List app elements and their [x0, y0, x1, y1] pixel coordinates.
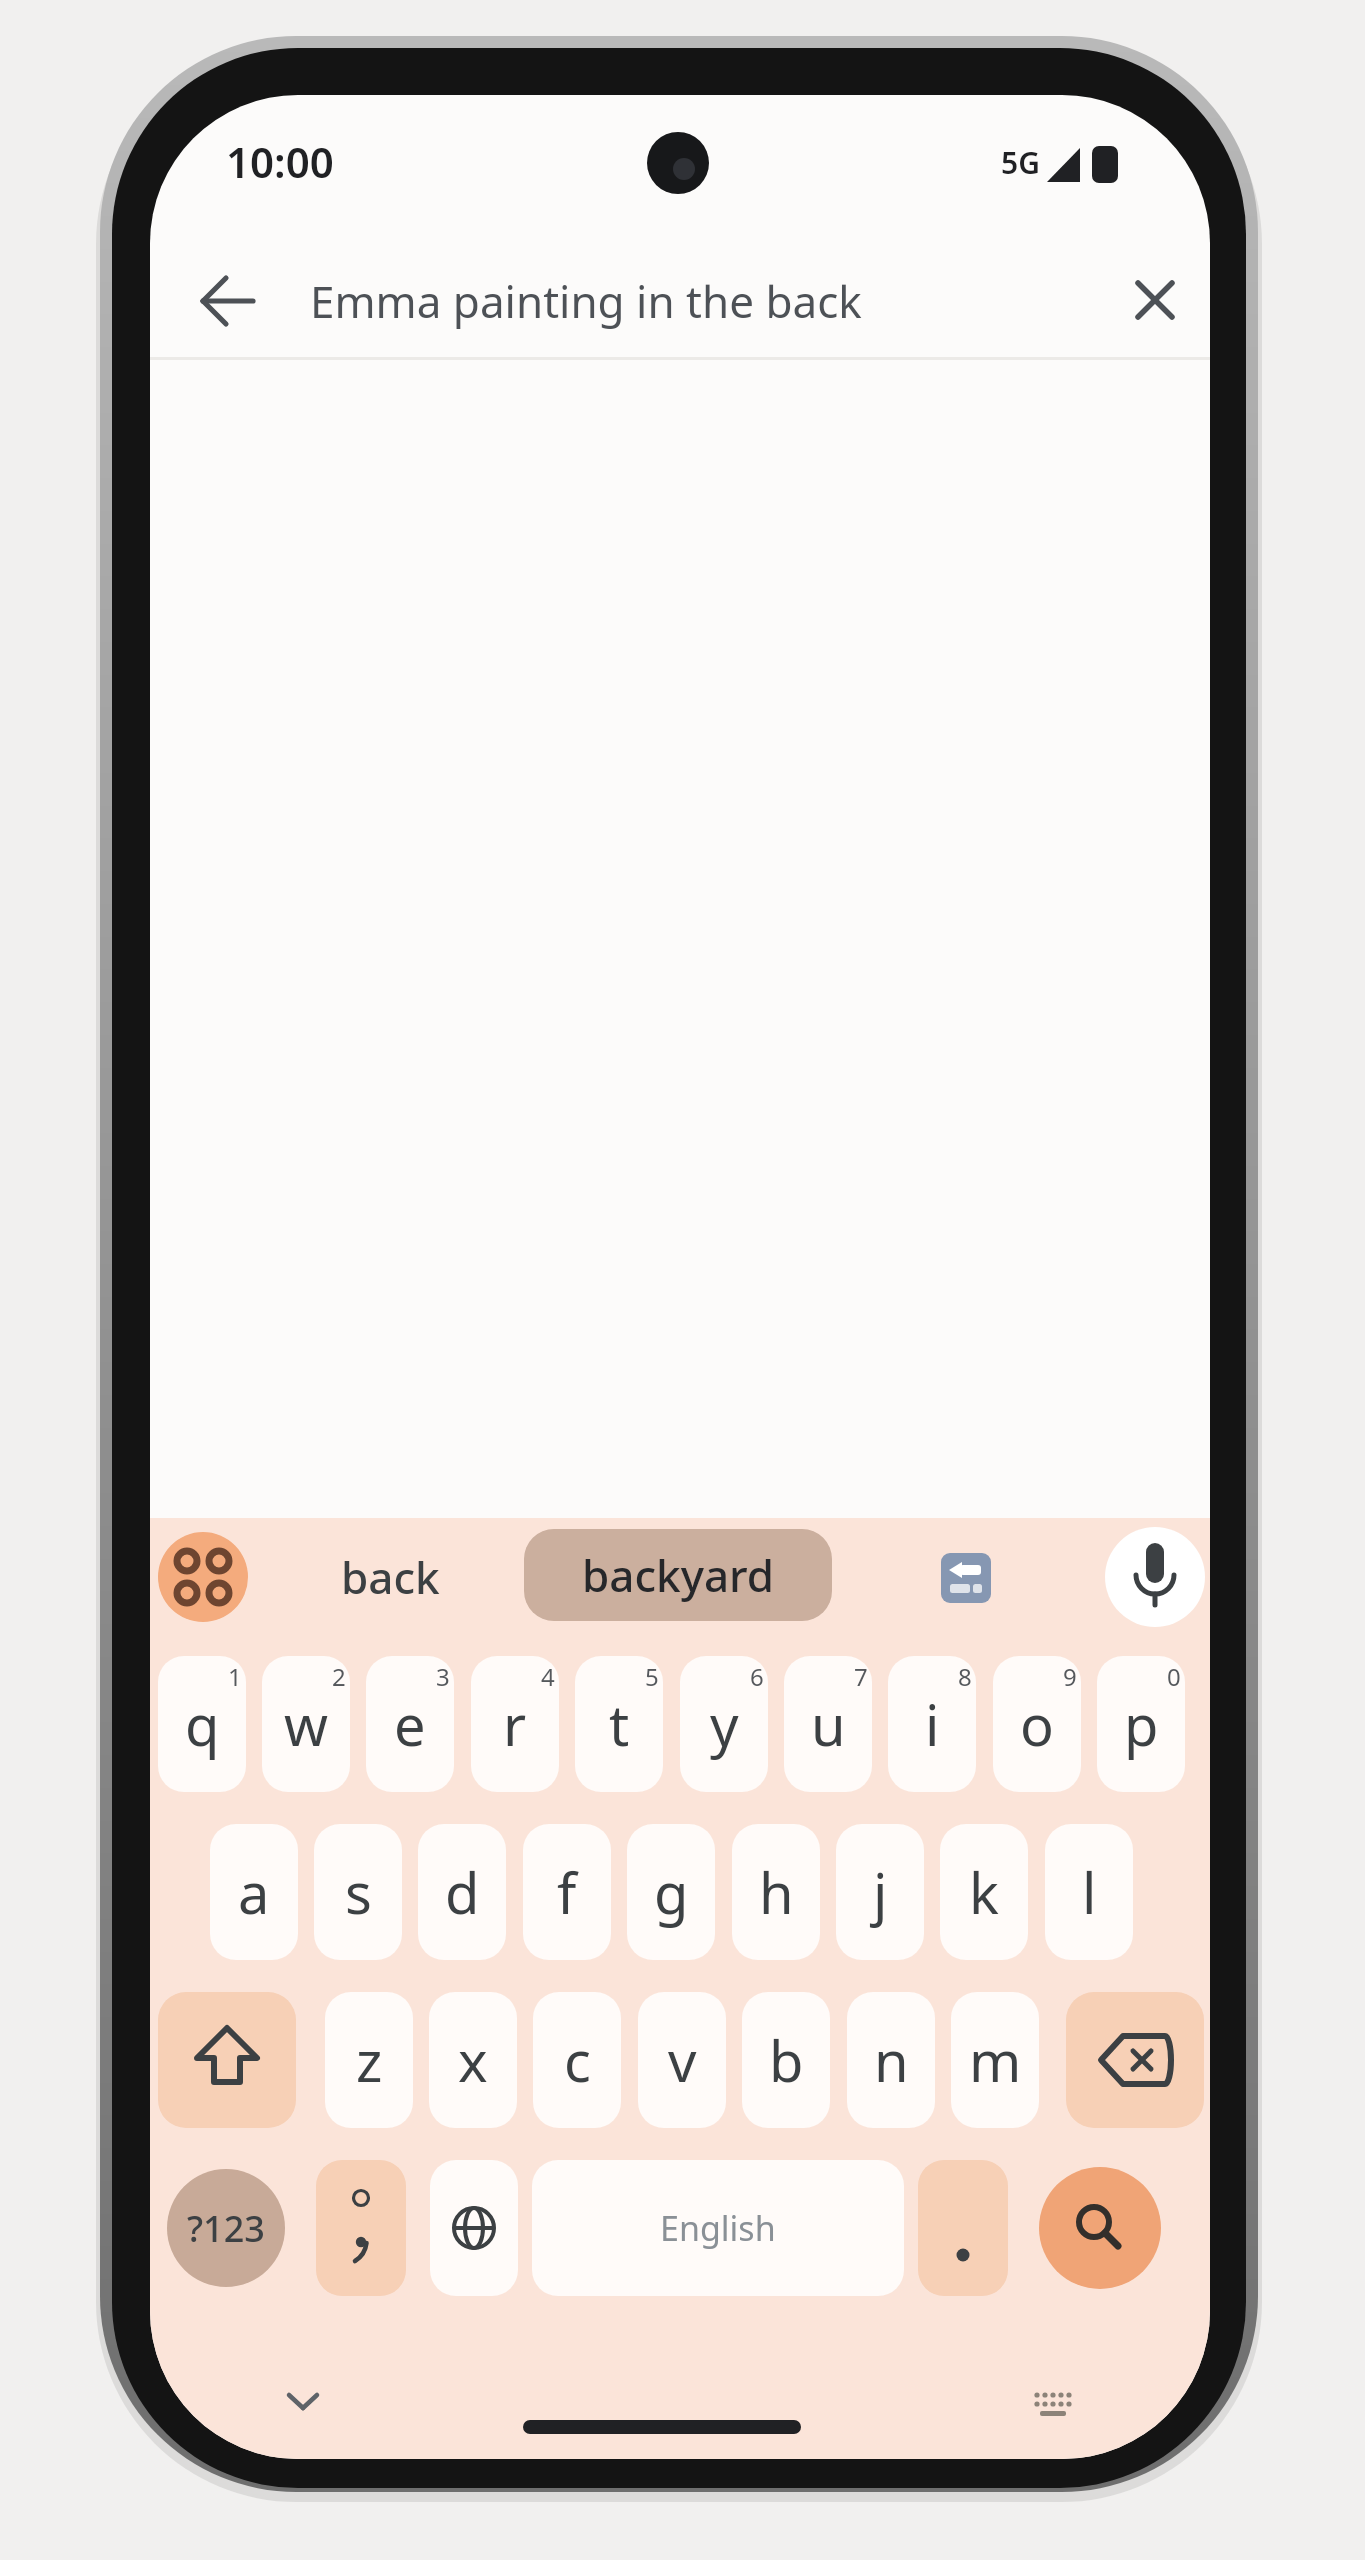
- button[interactable]: i: [888, 1656, 976, 1792]
- button[interactable]: [1105, 1527, 1205, 1627]
- staticText: j: [873, 1854, 888, 1930]
- button[interactable]: x: [429, 1992, 517, 2128]
- button[interactable]: [316, 2160, 406, 2296]
- button[interactable]: e: [366, 1656, 454, 1792]
- button[interactable]: q: [158, 1656, 246, 1792]
- staticText: y: [710, 1686, 739, 1762]
- button[interactable]: t: [575, 1656, 663, 1792]
- button[interactable]: b: [742, 1992, 830, 2128]
- button[interactable]: back: [325, 1547, 455, 1607]
- staticText: i: [925, 1686, 940, 1762]
- button[interactable]: p: [1097, 1656, 1185, 1792]
- staticText: h: [759, 1854, 794, 1930]
- staticText: g: [654, 1854, 689, 1930]
- staticText: q: [185, 1686, 220, 1762]
- staticText: 4: [541, 1660, 555, 1692]
- button[interactable]: c: [533, 1992, 621, 2128]
- button[interactable]: [918, 2160, 1008, 2296]
- staticText: a: [238, 1854, 270, 1930]
- staticText: e: [394, 1686, 426, 1762]
- staticText: m: [969, 2022, 1022, 2098]
- staticText: 10:00: [226, 133, 334, 189]
- button[interactable]: d: [418, 1824, 506, 1960]
- staticText: English: [660, 2205, 776, 2251]
- button[interactable]: v: [638, 1992, 726, 2128]
- staticText: f: [557, 1854, 577, 1930]
- staticText: u: [811, 1686, 846, 1762]
- button[interactable]: [158, 1992, 296, 2128]
- staticText: 8: [958, 1660, 972, 1692]
- button[interactable]: English: [532, 2160, 904, 2296]
- button[interactable]: h: [732, 1824, 820, 1960]
- staticText: t: [609, 1686, 630, 1762]
- button[interactable]: [430, 2160, 518, 2296]
- staticText: backyard: [582, 1545, 775, 1605]
- staticText: c: [564, 2022, 591, 2098]
- staticText: v: [668, 2022, 697, 2098]
- staticText: ?123: [187, 2204, 265, 2253]
- button[interactable]: backyard: [524, 1529, 832, 1621]
- button[interactable]: [1105, 255, 1205, 345]
- button[interactable]: s: [314, 1824, 402, 1960]
- staticText: 6: [750, 1660, 764, 1692]
- staticText: x: [458, 2022, 488, 2098]
- button[interactable]: [158, 1532, 248, 1622]
- button[interactable]: m: [951, 1992, 1039, 2128]
- staticText: z: [356, 2022, 383, 2098]
- staticText: 1: [228, 1660, 242, 1692]
- staticText: 5: [645, 1660, 659, 1692]
- staticText: Emma painting in the back: [310, 271, 862, 331]
- button[interactable]: w: [262, 1656, 350, 1792]
- button[interactable]: f: [523, 1824, 611, 1960]
- staticText: n: [874, 2022, 909, 2098]
- button[interactable]: [1039, 2167, 1161, 2289]
- staticText: 7: [854, 1660, 868, 1692]
- button[interactable]: u: [784, 1656, 872, 1792]
- button[interactable]: [941, 1553, 991, 1603]
- staticText: 9: [1063, 1660, 1077, 1692]
- staticText: p: [1124, 1686, 1159, 1762]
- staticText: d: [445, 1854, 480, 1930]
- staticText: w: [284, 1686, 329, 1762]
- button[interactable]: g: [627, 1824, 715, 1960]
- button[interactable]: n: [847, 1992, 935, 2128]
- staticText: r: [503, 1686, 527, 1762]
- button[interactable]: l: [1045, 1824, 1133, 1960]
- staticText: s: [345, 1854, 372, 1930]
- staticText: back: [341, 1547, 440, 1607]
- button[interactable]: ?123: [167, 2169, 285, 2287]
- button[interactable]: o: [993, 1656, 1081, 1792]
- staticText: b: [769, 2022, 804, 2098]
- button[interactable]: k: [940, 1824, 1028, 1960]
- button[interactable]: z: [325, 1992, 413, 2128]
- staticText: 2: [332, 1660, 346, 1692]
- button[interactable]: y: [680, 1656, 768, 1792]
- button[interactable]: [1066, 1992, 1204, 2128]
- button[interactable]: [180, 255, 280, 345]
- staticText: 0: [1167, 1660, 1181, 1692]
- button[interactable]: j: [836, 1824, 924, 1960]
- staticText: 3: [436, 1660, 450, 1692]
- staticText: 5G: [1001, 142, 1040, 183]
- button[interactable]: a: [210, 1824, 298, 1960]
- button[interactable]: r: [471, 1656, 559, 1792]
- button[interactable]: Emma painting in the back: [310, 271, 1070, 331]
- staticText: k: [969, 1854, 999, 1930]
- staticText: o: [1020, 1686, 1054, 1762]
- staticText: l: [1082, 1854, 1097, 1930]
